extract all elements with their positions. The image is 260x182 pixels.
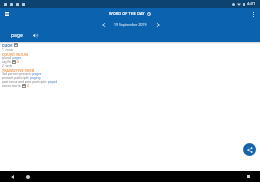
button[interactable]: Play pronunciation <box>32 32 39 39</box>
staticText: past tense and past participle: paged <box>2 80 58 84</box>
button[interactable]: Share <box>243 143 256 156</box>
staticText: say/hi <box>2 60 11 64</box>
staticText: 4 <box>17 60 19 64</box>
staticText: 1 noun <box>2 48 14 52</box>
staticText: TRANSITIVE VERB <box>2 68 35 72</box>
staticText: WORD OF THE DAY <box>109 11 145 16</box>
button[interactable]: Show image <box>22 84 26 88</box>
staticText: 2 verb <box>2 64 13 68</box>
button[interactable]: Back <box>8 172 17 181</box>
staticText: anoro-storia <box>2 84 21 88</box>
staticText: 4:31 <box>247 1 256 7</box>
staticText: 19 September 2019 <box>114 22 147 27</box>
button[interactable]: Show image <box>12 60 16 64</box>
staticText: 4 <box>27 84 29 88</box>
staticText: 3rd person present: pages <box>2 72 42 76</box>
button[interactable]: More options <box>249 10 258 19</box>
staticText: COUNT NOUN <box>2 52 28 56</box>
staticText: page <box>11 32 23 39</box>
button[interactable]: Show image <box>14 43 18 47</box>
button[interactable]: Next day <box>153 20 162 29</box>
button[interactable]: Recent apps <box>244 172 253 181</box>
staticText: plural: pages <box>2 56 22 60</box>
button[interactable]: Previous day <box>99 20 108 29</box>
button[interactable]: Home <box>23 172 32 181</box>
button[interactable]: Open navigation menu <box>2 9 11 18</box>
staticText: page <box>2 42 13 47</box>
staticText: present participle: paging <box>2 76 41 80</box>
